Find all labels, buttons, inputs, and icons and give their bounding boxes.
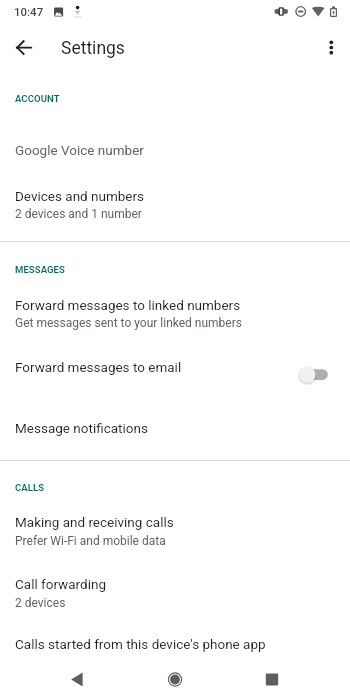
button[interactable]: Forward messages to email [0,340,350,397]
button[interactable]: Message notifications [0,397,350,450]
staticText: Call forwarding [15,576,106,592]
button[interactable]: More options [313,29,349,65]
staticText: Devices and numbers [15,188,145,204]
staticText: CALLS [15,482,45,493]
button[interactable]: Forward messages to linked numbers [0,285,350,340]
button[interactable]: Back [45,656,109,700]
staticText: Google Voice number [15,142,144,158]
staticText: Forward messages to linked numbers [15,297,241,313]
button[interactable]: Google Voice number [0,120,350,170]
staticText: Forward messages to email [15,359,182,375]
staticText: Making and receiving calls [15,514,174,530]
staticText: 2 devices [15,596,66,610]
staticText: Settings [61,38,125,59]
staticText: 10:47 [14,5,44,18]
button[interactable]: Back [6,24,42,60]
staticText: 2 devices and 1 number [15,207,142,221]
staticText: MESSAGES [15,264,65,275]
button[interactable]: Call forwarding [0,560,350,620]
staticText: Calls started from this device's phone a… [15,636,266,652]
button[interactable]: Calls started from this device's phone a… [0,620,350,655]
button[interactable]: Devices and numbers [0,170,350,232]
button[interactable]: Making and receiving calls [0,503,350,560]
button[interactable]: Forward messages to email toggle [294,362,336,388]
button[interactable]: Recent apps [240,656,304,700]
staticText: Prefer Wi-Fi and mobile data [15,534,166,548]
staticText: Get messages sent to your linked numbers [15,316,242,330]
staticText: ACCOUNT [15,93,60,104]
staticText: Message notifications [15,420,148,436]
button[interactable]: Home [143,656,207,700]
